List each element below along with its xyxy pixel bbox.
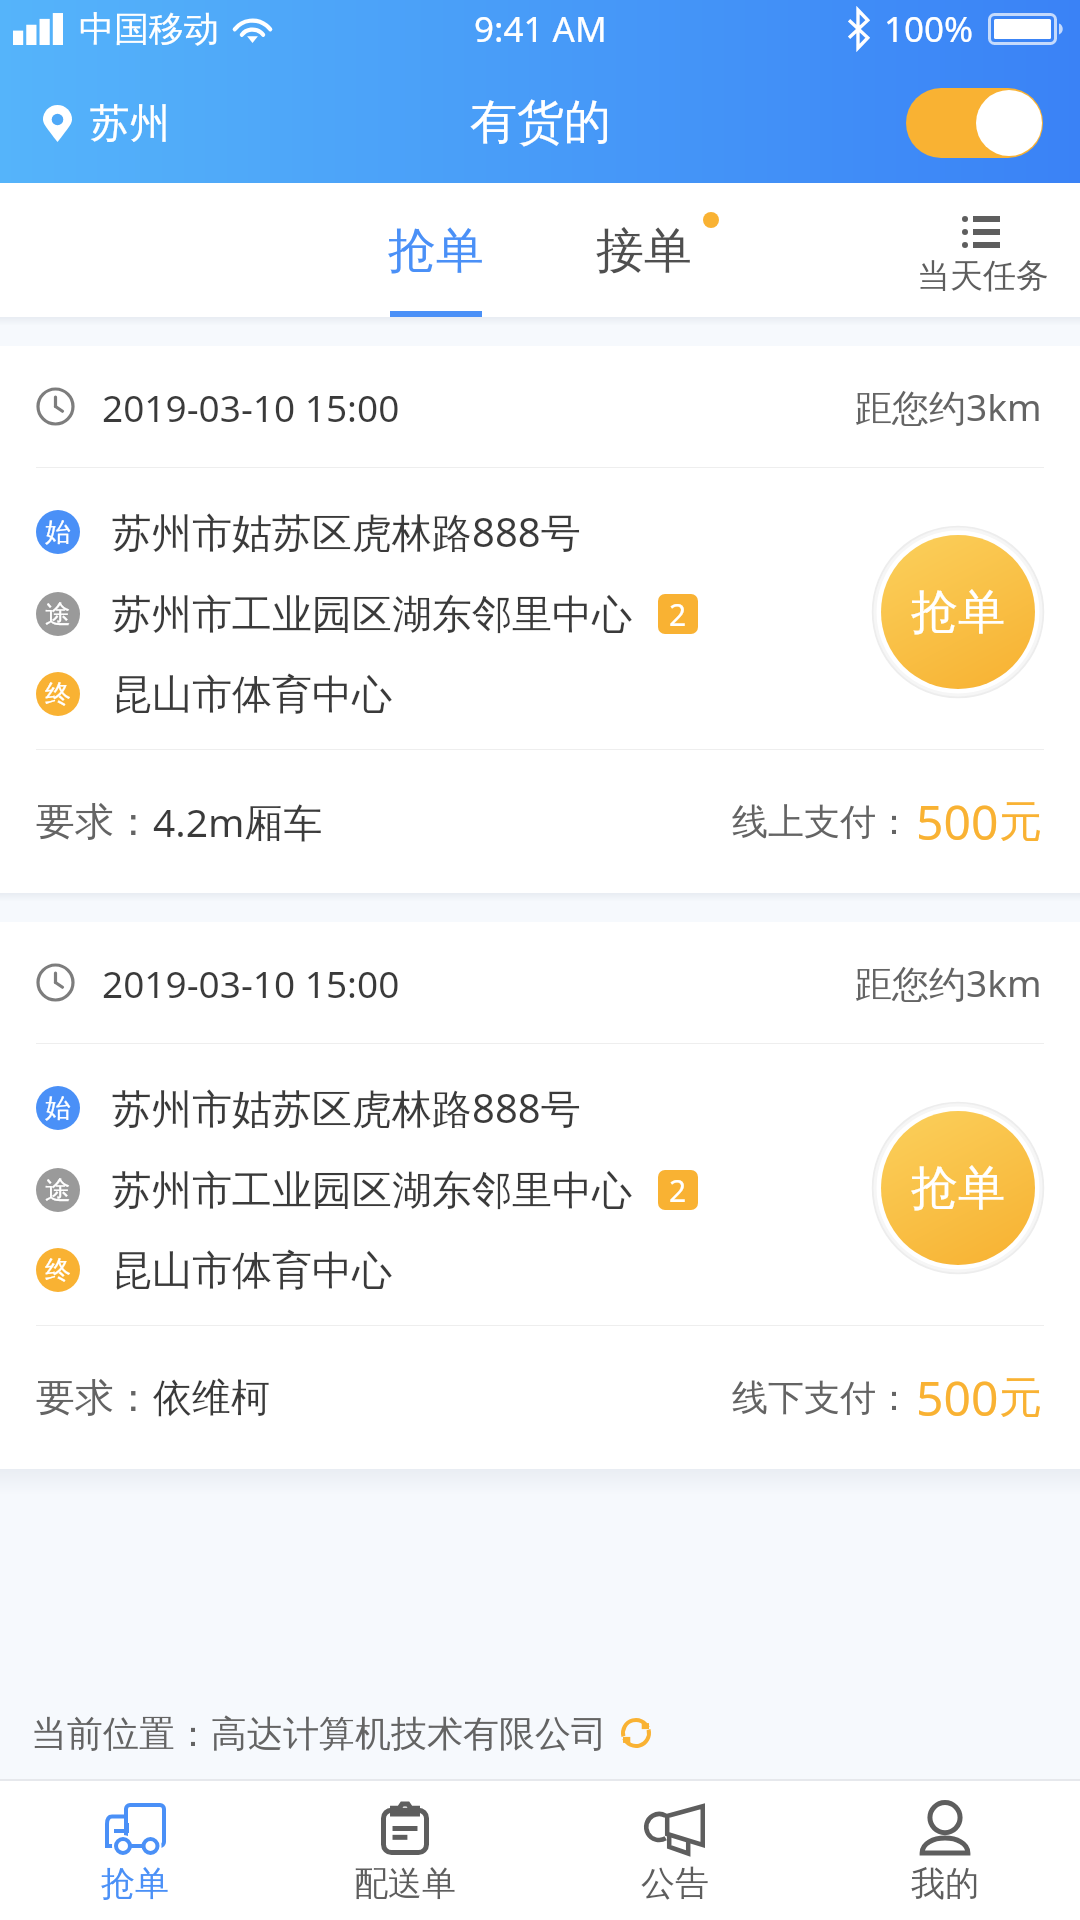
staticText: 4.2m厢车 bbox=[153, 795, 323, 848]
staticText: 途 bbox=[45, 1174, 71, 1207]
staticText: 当天任务 bbox=[917, 255, 1049, 297]
staticText: 苏州 bbox=[90, 98, 170, 148]
staticText: 要求： bbox=[36, 1373, 153, 1422]
staticText: 距您约3km bbox=[855, 957, 1042, 1008]
staticText: 配送单 bbox=[354, 1862, 456, 1905]
button[interactable]: 2019-03-10 15:00 bbox=[0, 922, 1080, 1469]
staticText: 有货的 bbox=[470, 93, 611, 152]
staticText: 苏州市姑苏区虎林路888号 bbox=[112, 1080, 581, 1135]
staticText: 苏州市工业园区湖东邻里中心 bbox=[112, 589, 632, 639]
staticText: 500 bbox=[916, 1365, 999, 1430]
staticText: 抢单 bbox=[388, 221, 484, 281]
staticText: 2 bbox=[669, 594, 687, 634]
staticText: 线上支付： bbox=[732, 799, 912, 844]
staticText: 昆山市体育中心 bbox=[112, 669, 392, 719]
button[interactable]: Refresh location bbox=[611, 1708, 661, 1758]
staticText: 2019-03-10 15:00 bbox=[102, 958, 400, 1008]
button[interactable]: 抢单 bbox=[0, 1781, 270, 1920]
staticText: 苏州市工业园区湖东邻里中心 bbox=[112, 1165, 632, 1215]
button[interactable]: 抢单 bbox=[873, 527, 1043, 697]
staticText: 昆山市体育中心 bbox=[112, 1245, 392, 1295]
staticText: 距您约3km bbox=[855, 381, 1042, 432]
staticText: 途 bbox=[45, 598, 71, 631]
staticText: 终 bbox=[45, 678, 71, 711]
staticText: 线下支付： bbox=[732, 1375, 912, 1420]
staticText: 元 bbox=[999, 795, 1042, 849]
button[interactable]: 2019-03-10 15:00 bbox=[0, 346, 1080, 893]
button[interactable]: 公告 bbox=[540, 1781, 810, 1920]
staticText: 抢单 bbox=[911, 1159, 1005, 1218]
staticText: 苏州市姑苏区虎林路888号 bbox=[112, 504, 581, 559]
staticText: 要求： bbox=[36, 797, 153, 846]
staticText: 公告 bbox=[641, 1862, 709, 1905]
button[interactable]: 接单 bbox=[564, 183, 724, 317]
staticText: 当前位置：高达计算机技术有限公司 bbox=[31, 1711, 607, 1756]
staticText: 2 bbox=[669, 1170, 687, 1210]
button[interactable]: 苏州 bbox=[0, 88, 190, 158]
staticText: 我的 bbox=[911, 1862, 979, 1905]
button[interactable]: 当天任务 bbox=[900, 183, 1080, 317]
button[interactable]: Online toggle bbox=[906, 88, 1043, 158]
staticText: 终 bbox=[45, 1254, 71, 1287]
staticText: 中国移动 bbox=[79, 7, 219, 51]
staticText: 抢单 bbox=[101, 1862, 169, 1905]
button[interactable]: 抢单 bbox=[873, 1103, 1043, 1273]
staticText: 100% bbox=[884, 5, 974, 53]
staticText: 始 bbox=[45, 1092, 71, 1125]
button[interactable]: 抢单 bbox=[356, 183, 516, 317]
button[interactable]: 配送单 bbox=[270, 1781, 540, 1920]
staticText: 始 bbox=[45, 516, 71, 549]
staticText: 500 bbox=[916, 789, 999, 854]
staticText: 接单 bbox=[596, 221, 692, 281]
staticText: 元 bbox=[999, 1371, 1042, 1425]
staticText: 依维柯 bbox=[153, 1373, 270, 1422]
staticText: 9:41 AM bbox=[474, 5, 607, 53]
staticText: 抢单 bbox=[911, 583, 1005, 642]
button[interactable]: 我的 bbox=[810, 1781, 1080, 1920]
staticText: 2019-03-10 15:00 bbox=[102, 382, 400, 432]
